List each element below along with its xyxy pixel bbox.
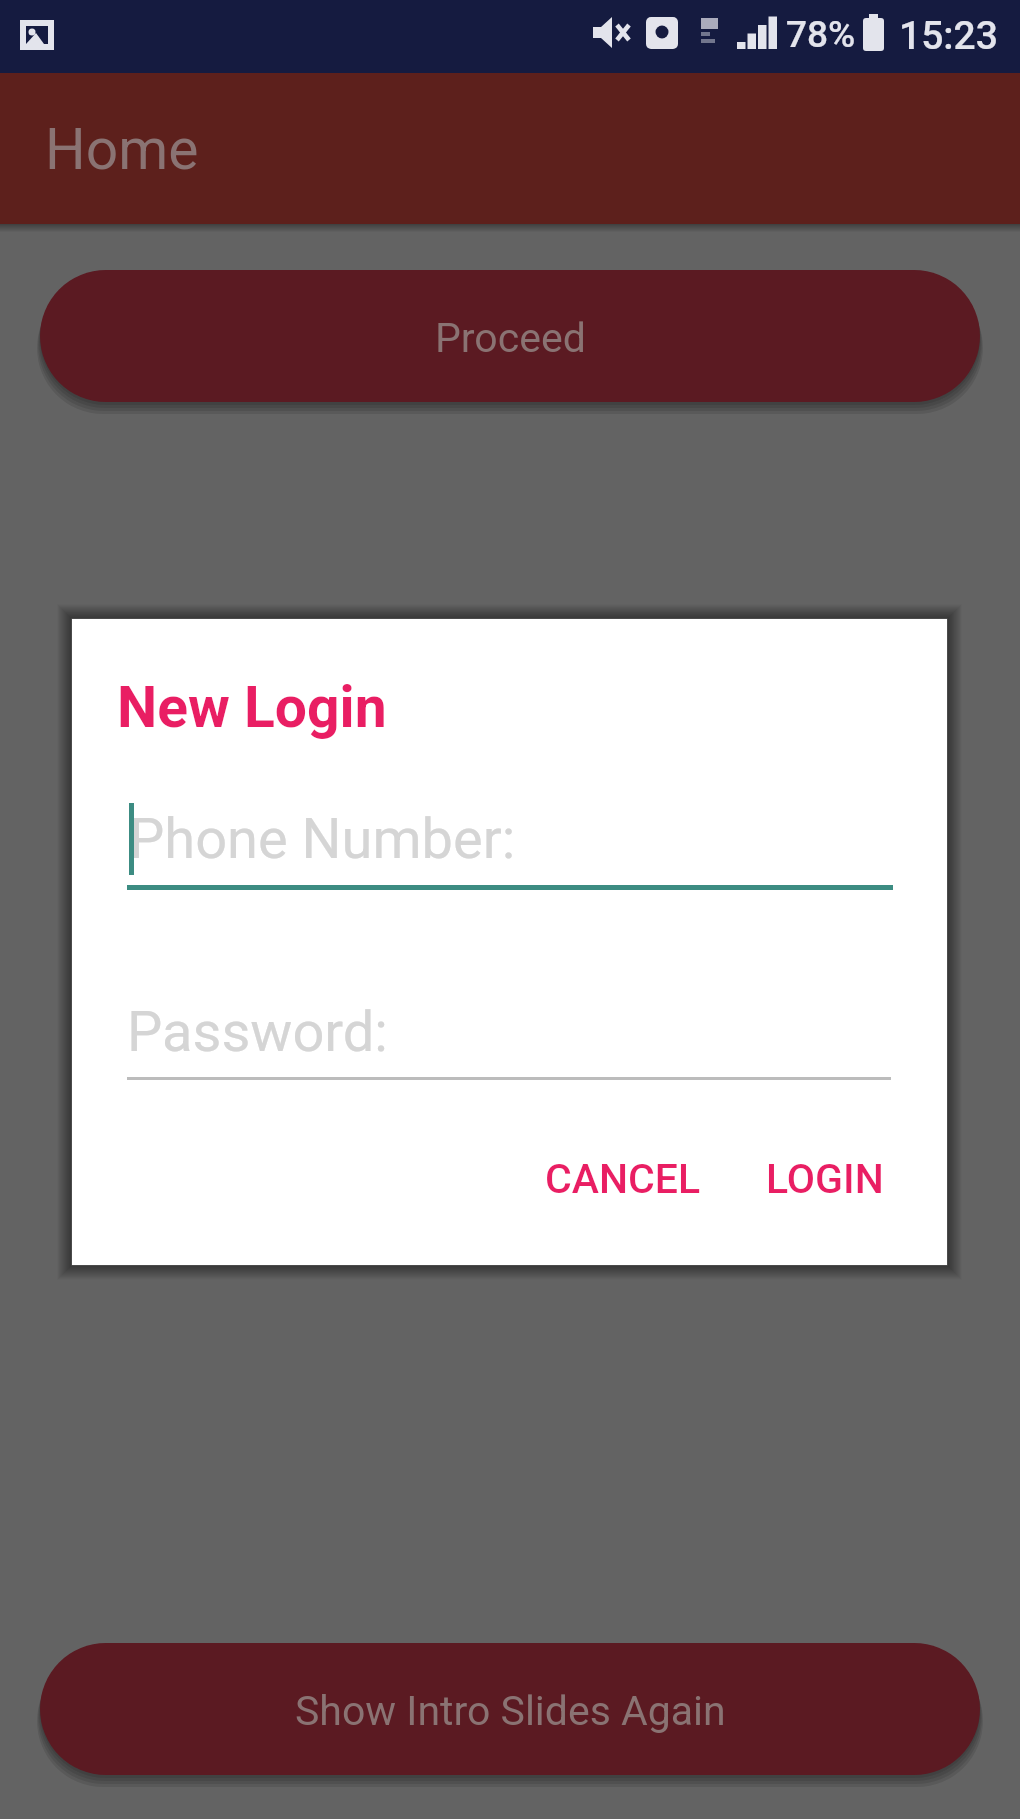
staticText: New Login [117, 674, 387, 741]
staticText: Password: [127, 999, 388, 1065]
staticText: Phone Number: [129, 806, 516, 872]
staticText: Home [45, 116, 199, 183]
other: Mobile data [700, 18, 724, 48]
other: Signal strength [737, 16, 779, 49]
button[interactable]: Show Intro Slides Again [40, 1643, 980, 1775]
staticText: 78% [786, 13, 856, 56]
button[interactable]: CANCEL [517, 1135, 729, 1223]
button[interactable]: Proceed [40, 270, 980, 402]
staticText: Show Intro Slides Again [295, 1687, 726, 1735]
other: Battery 78 percent [861, 14, 887, 51]
button[interactable]: Phone Number: [122, 791, 897, 895]
staticText: 15:23 [899, 13, 998, 59]
staticText: Proceed [435, 314, 586, 362]
staticText: LOGIN [766, 1155, 884, 1203]
other: Screenshot saved [18, 16, 58, 56]
button[interactable]: Password: [122, 984, 897, 1084]
staticText: CANCEL [545, 1155, 701, 1203]
other: Alarm set [646, 17, 678, 49]
other: Sound off [593, 17, 631, 48]
button[interactable]: LOGIN [738, 1135, 912, 1223]
